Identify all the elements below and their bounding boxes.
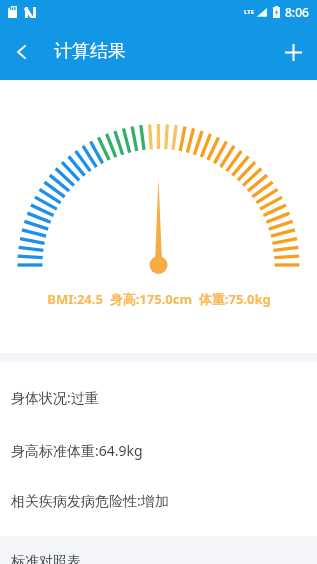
button[interactable]: 相关疾病发病危险性:增加 — [0, 491, 317, 510]
button[interactable]: Back — [0, 30, 44, 74]
staticText: 身体状况:过重 — [11, 388, 99, 407]
staticText: LTE — [244, 8, 255, 16]
button[interactable]: 身体状况:过重 — [0, 388, 317, 407]
staticText: 身高标准体重:64.9kg — [11, 441, 143, 460]
staticText: 标准对照表 — [11, 553, 81, 564]
staticText: 计算结果 — [54, 40, 126, 63]
button[interactable]: 身高标准体重:64.9kg — [0, 441, 317, 460]
button[interactable]: Add — [269, 28, 317, 76]
staticText: 相关疾病发病危险性:增加 — [11, 491, 169, 510]
staticText: 8:06 — [285, 4, 309, 20]
staticText: BMI:24.5 身高:175.0cm 体重:75.0kg — [47, 290, 271, 308]
